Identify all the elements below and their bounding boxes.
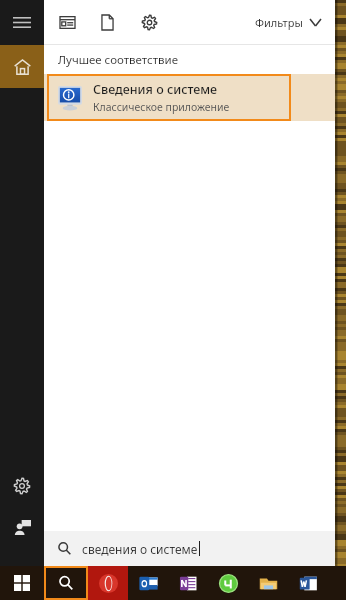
button[interactable]: Settings: [0, 466, 44, 506]
button[interactable]: Apps: [54, 9, 80, 35]
button[interactable]: uTorrent: [208, 566, 248, 600]
button[interactable]: File Explorer: [248, 566, 288, 600]
button[interactable]: OneNote: [168, 566, 208, 600]
staticText: Классическое приложение: [93, 100, 230, 114]
staticText: сведения о системе: [82, 541, 198, 557]
staticText: Лучшее соответствие: [58, 52, 178, 68]
button[interactable]: Settings: [136, 9, 162, 35]
button[interactable]: Фильтры: [247, 9, 329, 36]
button[interactable]: Opera: [88, 566, 128, 600]
button[interactable]: Search: [44, 566, 88, 600]
staticText: Фильтры: [255, 15, 303, 30]
button[interactable]: Account: [0, 506, 44, 548]
button[interactable]: Start: [0, 566, 44, 600]
staticText: Сведения о системе: [93, 81, 218, 98]
button[interactable]: Menu: [0, 0, 44, 45]
button[interactable]: сведения о системе: [44, 531, 335, 566]
button[interactable]: Home: [0, 45, 44, 88]
button[interactable]: Word: [288, 566, 328, 600]
button[interactable]: Documents: [94, 9, 120, 35]
button[interactable]: Outlook: [128, 566, 168, 600]
button[interactable]: Сведения о системе: [47, 74, 291, 121]
